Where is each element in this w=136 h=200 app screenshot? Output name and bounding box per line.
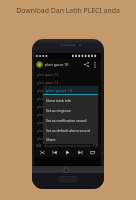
button[interactable]: Previous: [50, 148, 59, 157]
button[interactable]: Play: [63, 148, 72, 157]
button[interactable]: pleci gacor 11: [34, 102, 101, 110]
button[interactable]: More options: [91, 61, 99, 69]
staticText: Set as ringtone: [46, 108, 71, 113]
button[interactable]: pleci gacor 13: [34, 86, 101, 94]
button[interactable]: Shuffle: [38, 148, 47, 157]
staticText: Show track info: [46, 98, 72, 103]
button[interactable]: Next: [76, 148, 85, 157]
button[interactable]: pleci gacor 07: [34, 134, 101, 142]
button[interactable]: Share: [82, 60, 91, 69]
staticText: 0:00: [36, 144, 42, 148]
button[interactable]: Set as default alarm sound: [43, 125, 98, 135]
staticText: pleci gacor 10: [37, 112, 59, 116]
button[interactable]: Set as notification sound: [43, 115, 98, 125]
button[interactable]: Share: [43, 135, 98, 144]
staticText: Download Dan Latih PLECI anda: [0, 6, 136, 15]
button[interactable]: pleci gacor 15: [34, 70, 101, 78]
staticText: pleci gacor 12: [37, 96, 59, 100]
staticText: pleci gacor 14: [37, 80, 59, 84]
staticText: pleci gacor 07: [37, 136, 59, 140]
button[interactable]: Repeat: [88, 148, 97, 157]
staticText: Set as notification sound: [46, 118, 87, 123]
staticText: pleci gacor 09: [37, 120, 59, 124]
staticText: pleci gacor 15: [37, 72, 59, 76]
staticText: 1:07: [93, 144, 99, 148]
staticText: pleci gacor 11: [37, 104, 59, 108]
staticText: pleci gacor 13: [37, 88, 59, 92]
button[interactable]: Show track info: [43, 95, 98, 105]
staticText: Share: [46, 137, 56, 142]
button[interactable]: pleci gacor 14: [34, 78, 101, 86]
button[interactable]: pleci gacor 09: [34, 118, 101, 126]
button[interactable]: pleci gacor 08: [34, 126, 101, 134]
staticText: pleci gacor 08: [37, 128, 59, 132]
button[interactable]: pleci gacor 10: [34, 110, 101, 118]
button[interactable]: pleci gacor 06: [34, 142, 101, 144]
button[interactable]: Set as ringtone: [43, 105, 98, 115]
staticText: pleci gacor 10: [46, 88, 73, 93]
staticText: pleci gacor 06: [37, 142, 59, 144]
staticText: Set as default alarm sound: [46, 128, 90, 133]
button[interactable]: App icon: [36, 61, 43, 68]
button[interactable]: pleci gacor 12: [34, 94, 101, 102]
staticText: pleci gacor 10: [45, 62, 69, 67]
